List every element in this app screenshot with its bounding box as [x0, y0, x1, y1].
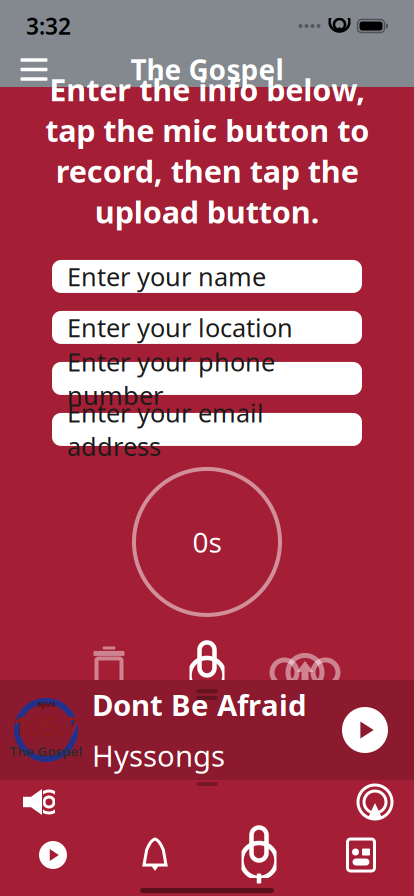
staticText: 0s [192, 523, 221, 561]
staticText: Dont Be Afraid [92, 685, 307, 724]
button[interactable]: WJGM [0, 680, 414, 780]
staticText: Enter the info below, tap the mic button… [45, 69, 369, 232]
button[interactable]: Listen live [3, 831, 103, 879]
button[interactable]: Enter your email address [52, 413, 362, 446]
button[interactable]: Upload [274, 639, 336, 701]
button[interactable]: Record audio [207, 831, 311, 879]
staticText: Enter your email address [67, 396, 264, 463]
staticText: Enter your location [67, 311, 293, 344]
button[interactable]: Delete recording [78, 639, 140, 701]
button[interactable]: Enter your phone number [52, 362, 362, 395]
button[interactable]: Record [176, 639, 238, 701]
staticText: Hyssongs [92, 736, 225, 775]
staticText: The Gospel [9, 742, 82, 760]
staticText: WJGM [36, 700, 55, 709]
staticText: 105.7 [12, 708, 79, 743]
staticText: The Gospel [130, 51, 283, 88]
staticText: Enter your phone number [67, 345, 275, 412]
button[interactable]: Menu [8, 47, 60, 91]
button[interactable]: Enter your location [52, 311, 362, 344]
button[interactable]: Volume [8, 774, 70, 830]
button[interactable]: Contact [311, 831, 411, 879]
staticText: 3:32 [26, 11, 71, 41]
button[interactable]: Live broadcast [344, 774, 406, 830]
staticText: Enter your name [67, 260, 266, 293]
button[interactable]: Alerts [103, 831, 207, 879]
button[interactable]: Enter your name [52, 260, 362, 293]
